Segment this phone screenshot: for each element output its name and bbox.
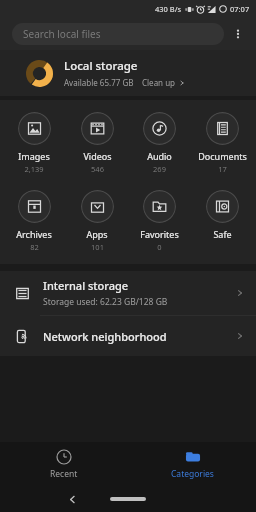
- staticText: Favorites: [140, 228, 179, 240]
- button[interactable]: Images: [5, 110, 63, 176]
- staticText: Available 65.77 GB: [64, 77, 134, 88]
- staticText: Internal storage: [43, 278, 129, 293]
- staticText: Apps: [86, 228, 108, 240]
- button[interactable]: Search local files: [12, 23, 224, 45]
- staticText: 82: [30, 242, 39, 252]
- staticText: 0: [157, 242, 162, 252]
- staticText: Archives: [16, 228, 52, 240]
- staticText: 546: [91, 164, 104, 174]
- staticText: Recent: [50, 468, 78, 480]
- staticText: Images: [18, 150, 50, 162]
- button[interactable]: Audio: [130, 110, 188, 176]
- staticText: Audio: [147, 150, 172, 162]
- staticText: Storage used: 62.23 GB/128 GB: [43, 296, 168, 308]
- button[interactable]: Network neighborhood: [0, 316, 256, 356]
- staticText: 2,139: [24, 164, 44, 174]
- button[interactable]: Favorites: [130, 188, 188, 254]
- staticText: Local storage: [64, 58, 138, 74]
- staticText: 07:07: [230, 4, 250, 14]
- button[interactable]: Videos: [68, 110, 126, 176]
- staticText: Search local files: [23, 27, 101, 41]
- staticText: Videos: [83, 150, 112, 162]
- button[interactable]: Archives: [5, 188, 63, 254]
- staticText: 269: [153, 164, 166, 174]
- button[interactable]: Local storage: [0, 50, 256, 96]
- button[interactable]: Internal storage: [0, 271, 256, 315]
- button[interactable]: Categories: [165, 443, 220, 486]
- staticText: Network neighborhood: [43, 329, 167, 344]
- staticText: 101: [91, 242, 104, 252]
- button[interactable]: Documents: [193, 110, 251, 176]
- staticText: Documents: [198, 150, 247, 162]
- staticText: Safe: [213, 228, 232, 240]
- button[interactable]: Apps: [68, 188, 126, 254]
- staticText: Categories: [171, 468, 214, 480]
- staticText: 17: [218, 164, 227, 174]
- button[interactable]: Recent: [44, 443, 84, 486]
- staticText: Clean up: [142, 77, 176, 88]
- button[interactable]: Back: [64, 491, 80, 507]
- button[interactable]: Safe: [193, 188, 251, 242]
- staticText: 430 B/s: [155, 4, 182, 14]
- button[interactable]: More options: [224, 20, 252, 48]
